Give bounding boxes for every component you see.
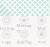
staticText: Mail [38,25,46,31]
staticText: Print [38,39,46,45]
staticText: AirDrop [0,25,14,31]
button[interactable]: Messages [17,16,32,30]
staticText: Add Tag [17,39,31,45]
button[interactable]: AirDrop [0,16,14,30]
button[interactable]: Add Tag [17,30,32,44]
staticText: Copy [2,39,11,45]
button[interactable]: Copy [0,30,14,44]
button[interactable]: Print [34,30,49,44]
staticText: Messages [17,23,32,33]
button[interactable]: Mail [34,16,49,30]
